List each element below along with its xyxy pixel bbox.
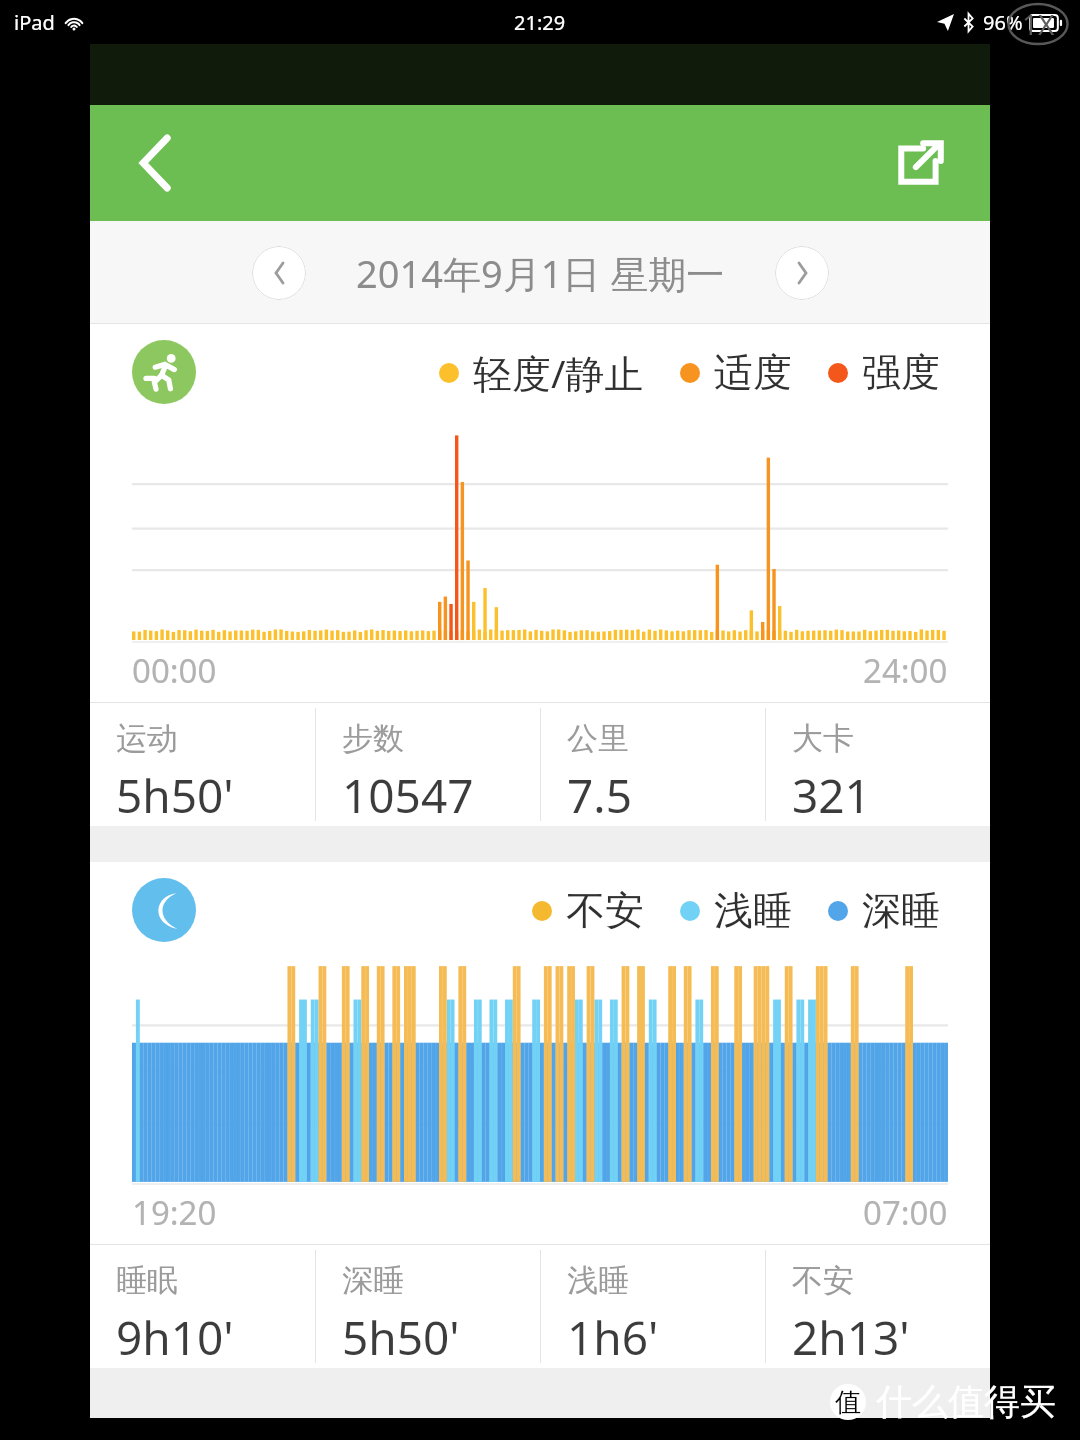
- button[interactable]: Previous day: [252, 246, 306, 300]
- staticText: 00:00: [132, 648, 217, 693]
- staticText: 轻度/静止: [473, 346, 644, 399]
- button[interactable]: Sleep: [132, 878, 196, 942]
- staticText: 1h6': [567, 1306, 659, 1368]
- staticText: 深睡: [862, 886, 940, 935]
- staticText: 2014年9月1日 星期一: [356, 247, 725, 299]
- button[interactable]: Next day: [775, 246, 829, 300]
- button[interactable]: 轻度/静止: [439, 346, 644, 399]
- button[interactable]: 大卡: [766, 703, 990, 826]
- staticText: 步数: [342, 719, 404, 758]
- button[interactable]: 1X zoom: [1002, 4, 1074, 44]
- staticText: 96%: [983, 9, 1023, 36]
- staticText: 值: [835, 1386, 861, 1419]
- staticText: 浅睡: [714, 886, 792, 935]
- staticText: 07:00: [863, 1190, 948, 1235]
- staticText: iPad: [14, 9, 55, 36]
- staticText: 5h50': [116, 764, 234, 826]
- button[interactable]: Share: [882, 125, 958, 201]
- button[interactable]: 不安: [766, 1245, 990, 1368]
- staticText: 2h13': [792, 1306, 910, 1368]
- button[interactable]: 深睡: [828, 886, 940, 935]
- staticText: 24:00: [863, 648, 948, 693]
- staticText: 运动: [116, 719, 178, 758]
- staticText: 7.5: [567, 764, 632, 826]
- staticText: 5h50': [342, 1306, 460, 1368]
- button[interactable]: 运动: [90, 703, 315, 826]
- button[interactable]: 睡眠: [90, 1245, 315, 1368]
- button[interactable]: 浅睡: [680, 886, 792, 935]
- staticText: 不安: [566, 886, 644, 935]
- button[interactable]: Back: [118, 125, 194, 201]
- staticText: 浅睡: [567, 1261, 629, 1300]
- button[interactable]: Activity: [132, 340, 196, 404]
- staticText: 9h10': [116, 1306, 234, 1368]
- staticText: 睡眠: [116, 1261, 178, 1300]
- button[interactable]: 公里: [541, 703, 765, 826]
- staticText: 大卡: [792, 719, 854, 758]
- staticText: 强度: [862, 348, 940, 397]
- button[interactable]: 深睡: [316, 1245, 540, 1368]
- button[interactable]: 不安: [532, 886, 644, 935]
- button[interactable]: 步数: [316, 703, 540, 826]
- staticText: 什么值得买: [876, 1379, 1056, 1424]
- staticText: 10547: [342, 764, 474, 826]
- staticText: 21:29: [514, 9, 566, 36]
- button[interactable]: 适度: [680, 348, 792, 397]
- button[interactable]: 强度: [828, 348, 940, 397]
- staticText: 19:20: [132, 1190, 217, 1235]
- staticText: 适度: [714, 348, 792, 397]
- staticText: 不安: [792, 1261, 854, 1300]
- button[interactable]: 浅睡: [541, 1245, 765, 1368]
- staticText: 公里: [567, 719, 629, 758]
- staticText: 深睡: [342, 1261, 404, 1300]
- staticText: 1X: [1022, 5, 1055, 43]
- staticText: 321: [792, 764, 871, 826]
